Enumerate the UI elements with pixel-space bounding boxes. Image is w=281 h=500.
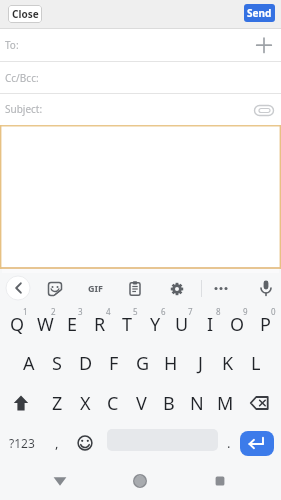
staticText: I: [207, 312, 214, 337]
staticText: 6: [161, 306, 166, 317]
button[interactable]: Q: [3, 305, 31, 343]
staticText: C: [107, 391, 119, 416]
button[interactable]: [4, 274, 32, 302]
staticText: N: [190, 391, 204, 416]
button[interactable]: R: [86, 305, 114, 343]
button[interactable]: .: [215, 423, 243, 463]
button[interactable]: G: [129, 343, 157, 383]
button[interactable]: O: [223, 305, 251, 343]
button[interactable]: GIF: [81, 274, 109, 302]
button[interactable]: Z: [43, 383, 71, 423]
staticText: L: [251, 351, 261, 376]
staticText: R: [94, 312, 106, 337]
button[interactable]: [240, 431, 274, 456]
button[interactable]: H: [157, 343, 185, 383]
staticText: T: [122, 312, 133, 337]
button[interactable]: M: [211, 383, 239, 423]
staticText: Subject:: [5, 102, 43, 116]
button[interactable]: [163, 275, 191, 303]
button[interactable]: [121, 275, 149, 303]
button[interactable]: N: [183, 383, 211, 423]
button[interactable]: Close: [8, 5, 42, 23]
staticText: Z: [52, 391, 63, 416]
staticText: K: [222, 351, 234, 376]
staticText: F: [109, 351, 119, 376]
staticText: 3: [78, 306, 83, 317]
button[interactable]: [250, 31, 278, 59]
button[interactable]: F: [100, 343, 128, 383]
button[interactable]: [252, 274, 280, 302]
button[interactable]: W: [31, 305, 59, 343]
button[interactable]: V: [127, 383, 155, 423]
button[interactable]: [0, 383, 42, 423]
staticText: 8: [216, 306, 221, 317]
staticText: 4: [106, 306, 111, 317]
staticText: 0: [271, 306, 276, 317]
button[interactable]: A: [15, 343, 43, 383]
button[interactable]: ?123: [2, 423, 42, 463]
staticText: E: [67, 312, 78, 337]
staticText: B: [163, 391, 175, 416]
staticText: A: [23, 351, 35, 376]
button[interactable]: I: [196, 305, 224, 343]
staticText: 1: [23, 306, 28, 317]
button[interactable]: [0, 125, 281, 269]
staticText: ,: [55, 434, 59, 452]
button[interactable]: Y: [141, 305, 169, 343]
staticText: Q: [10, 312, 25, 337]
staticText: Send: [247, 6, 272, 20]
button[interactable]: J: [186, 343, 214, 383]
button[interactable]: [126, 467, 154, 495]
button[interactable]: S: [43, 343, 71, 383]
button[interactable]: [206, 467, 234, 495]
button[interactable]: Subject:: [0, 94, 281, 124]
button[interactable]: K: [214, 343, 242, 383]
staticText: G: [136, 351, 150, 376]
button[interactable]: [71, 423, 99, 463]
button[interactable]: B: [155, 383, 183, 423]
staticText: .: [227, 434, 231, 452]
button[interactable]: [250, 96, 278, 124]
staticText: Cc/Bcc:: [5, 71, 39, 85]
staticText: D: [79, 351, 93, 376]
staticText: S: [52, 351, 62, 376]
button[interactable]: L: [242, 343, 270, 383]
staticText: 7: [188, 306, 193, 317]
button[interactable]: To:: [0, 29, 281, 61]
staticText: X: [80, 391, 91, 416]
staticText: 9: [243, 306, 248, 317]
staticText: J: [198, 351, 203, 376]
button[interactable]: E: [58, 305, 86, 343]
button[interactable]: U: [168, 305, 196, 343]
button[interactable]: [41, 275, 69, 303]
button[interactable]: X: [71, 383, 99, 423]
staticText: M: [217, 391, 234, 416]
staticText: P: [260, 312, 271, 337]
button[interactable]: [207, 274, 235, 302]
staticText: 5: [133, 306, 138, 317]
button[interactable]: T: [113, 305, 141, 343]
staticText: Close: [12, 7, 39, 21]
button[interactable]: Send: [244, 4, 275, 22]
button[interactable]: [46, 467, 74, 495]
staticText: 2: [51, 306, 56, 317]
staticText: W: [37, 312, 54, 337]
staticText: H: [164, 351, 178, 376]
staticText: ?123: [9, 435, 35, 451]
staticText: U: [175, 312, 189, 337]
staticText: V: [136, 391, 147, 416]
button[interactable]: [239, 383, 281, 423]
button[interactable]: D: [72, 343, 100, 383]
button[interactable]: Cc/Bcc:: [0, 62, 281, 93]
button[interactable]: P: [251, 305, 279, 343]
button[interactable]: ,: [43, 423, 71, 463]
staticText: To:: [5, 38, 19, 52]
staticText: GIF: [88, 282, 103, 294]
button[interactable]: C: [99, 383, 127, 423]
staticText: O: [230, 312, 245, 337]
staticText: Y: [150, 312, 161, 337]
